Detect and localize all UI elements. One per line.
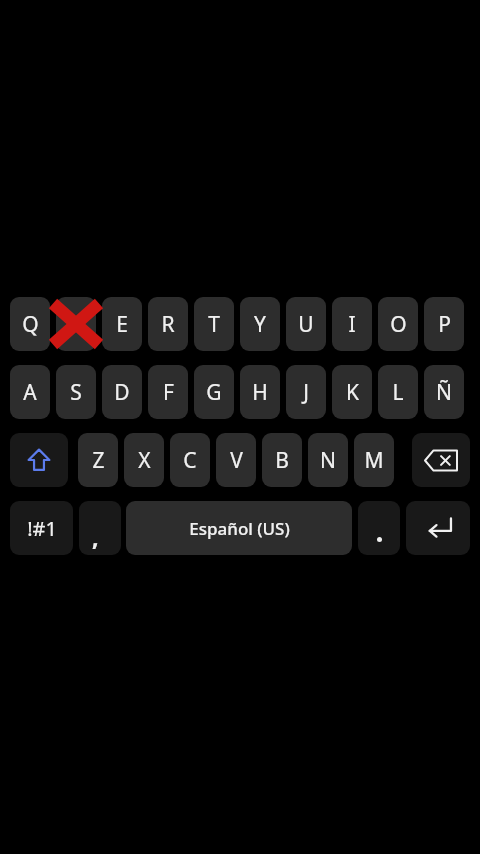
button[interactable]: Ñ [424,365,464,419]
staticText: C [183,446,197,475]
staticText: N [320,446,336,475]
staticText: Ñ [436,378,452,407]
button[interactable]: O [378,297,418,351]
button[interactable]: Q [10,297,50,351]
staticText: G [206,378,222,407]
staticText: X [138,446,151,475]
button[interactable]: Backspace [412,433,470,487]
staticText: L [392,378,404,407]
button[interactable]: W [56,297,96,351]
button[interactable]: V [216,433,256,487]
button[interactable]: D [102,365,142,419]
button[interactable]: I [332,297,372,351]
staticText: O [390,310,407,339]
staticText: P [438,310,451,339]
button[interactable]: Z [78,433,118,487]
button[interactable]: L [378,365,418,419]
button[interactable]: R [148,297,188,351]
button[interactable]: J [286,365,326,419]
staticText: D [114,378,130,407]
staticText: V [230,446,243,475]
button[interactable]: H [240,365,280,419]
button[interactable]: G [194,365,234,419]
staticText: S [70,378,82,407]
staticText: R [161,310,175,339]
button[interactable]: !#1 [10,501,73,555]
staticText: Q [22,310,39,339]
staticText: I [348,310,356,339]
staticText: W [66,310,86,339]
button[interactable]: K [332,365,372,419]
staticText: E [116,310,128,339]
button[interactable]: P [424,297,464,351]
staticText: F [163,378,174,407]
button[interactable]: A [10,365,50,419]
staticText: B [275,446,289,475]
button[interactable]: S [56,365,96,419]
button[interactable]: B [262,433,302,487]
button[interactable]: U [286,297,326,351]
staticText: H [252,378,268,407]
button[interactable]: F [148,365,188,419]
button[interactable]: E [102,297,142,351]
staticText: A [23,378,37,407]
staticText: Español (US) [189,517,290,540]
button[interactable]: X [124,433,164,487]
staticText: !#1 [27,515,57,542]
button[interactable]: Comma [79,501,121,555]
staticText: Z [92,446,105,475]
staticText: , [92,521,99,552]
button[interactable]: C [170,433,210,487]
button[interactable]: Y [240,297,280,351]
staticText: M [364,446,384,475]
staticText: Y [254,310,266,339]
button[interactable]: N [308,433,348,487]
button[interactable]: M [354,433,394,487]
button[interactable]: Español (US) [126,501,352,555]
staticText: T [208,310,220,339]
button[interactable]: Period [358,501,400,555]
staticText: U [298,310,314,339]
staticText: K [346,378,359,407]
button[interactable]: Enter [406,501,470,555]
button[interactable]: Shift [10,433,68,487]
button[interactable]: T [194,297,234,351]
staticText: J [303,378,309,407]
